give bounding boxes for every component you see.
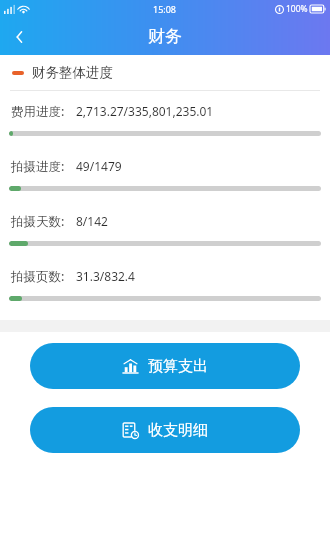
staticText: 31.3/832.4: [76, 268, 135, 284]
button[interactable]: 收支明细: [30, 407, 300, 453]
button[interactable]: Back: [0, 18, 40, 55]
staticText: 财务: [148, 26, 182, 47]
staticText: 费用进度:: [11, 103, 65, 120]
staticText: 拍摄天数:: [11, 213, 65, 230]
staticText: 15:08: [153, 3, 177, 15]
button[interactable]: 预算支出: [30, 343, 300, 389]
staticText: 收支明细: [148, 421, 208, 440]
staticText: 预算支出: [148, 357, 208, 376]
staticText: 财务整体进度: [32, 64, 113, 81]
staticText: 100%: [286, 3, 308, 15]
staticText: 49/1479: [76, 158, 122, 174]
staticText: 2,713.27/335,801,235.01: [76, 103, 214, 119]
staticText: 拍摄进度:: [11, 158, 65, 175]
staticText: 8/142: [76, 213, 108, 229]
staticText: 拍摄页数:: [11, 268, 65, 285]
